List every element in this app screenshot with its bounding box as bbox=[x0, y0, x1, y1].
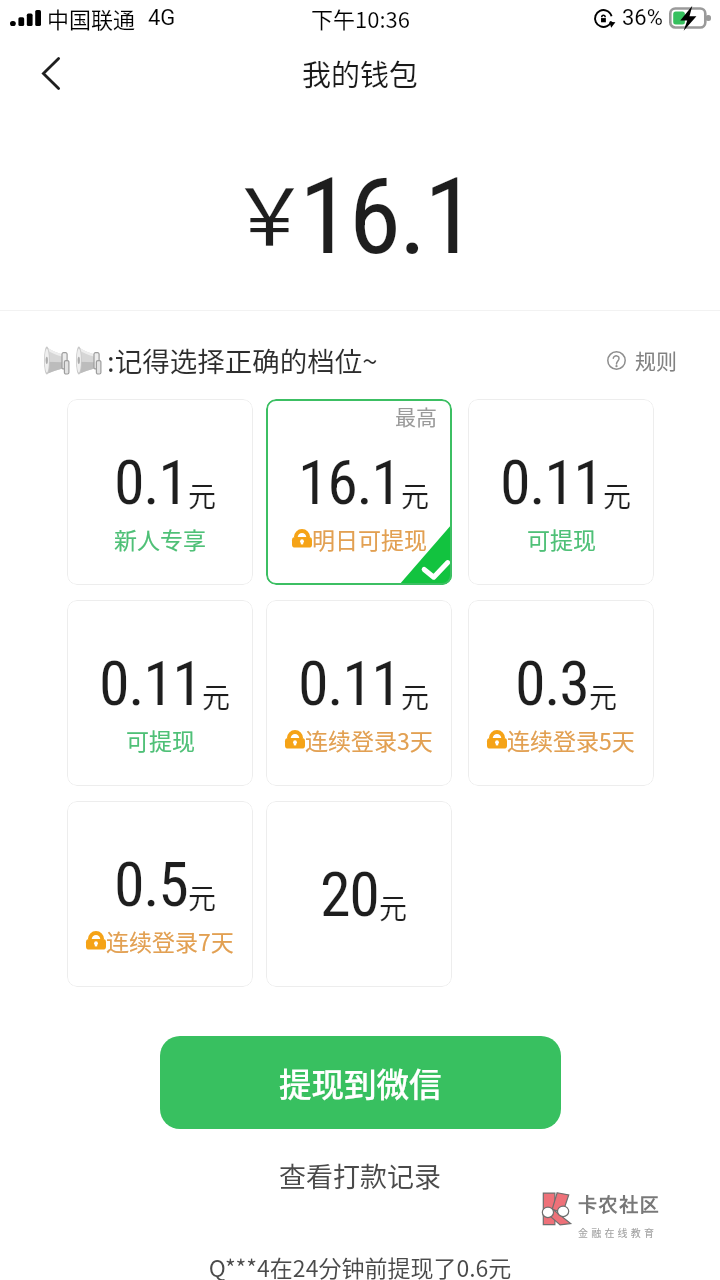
staticText: 连续登录7天 bbox=[106, 924, 234, 957]
staticText: 元 bbox=[589, 676, 618, 717]
staticText: 36% bbox=[622, 5, 663, 31]
button[interactable]: 0.1 bbox=[67, 399, 253, 585]
staticText: 元 bbox=[401, 676, 430, 717]
staticText: 下午10:36 bbox=[311, 2, 410, 34]
button[interactable]: 0.11 bbox=[67, 600, 253, 786]
staticText: 元 bbox=[188, 475, 217, 516]
staticText: 连续登录5天 bbox=[507, 723, 635, 756]
button[interactable]: 提现到微信 bbox=[160, 1036, 561, 1129]
staticText: 连续登录3天 bbox=[305, 723, 433, 756]
staticText: 元 bbox=[603, 475, 632, 516]
button[interactable]: Back bbox=[22, 44, 80, 102]
staticText: 16.1 bbox=[299, 155, 474, 279]
staticText: 0.11 bbox=[500, 446, 603, 519]
staticText: 元 bbox=[202, 676, 231, 717]
staticText: 0.3 bbox=[515, 647, 589, 720]
staticText: 0.11 bbox=[99, 647, 202, 720]
staticText: 可提现 bbox=[126, 723, 195, 756]
staticText: 新人专享 bbox=[114, 522, 206, 555]
staticText: 可提现 bbox=[527, 522, 596, 555]
staticText: Q***4在24分钟前提现了0.6元 bbox=[0, 1250, 720, 1280]
button[interactable]: 0.11 bbox=[468, 399, 654, 585]
staticText: ￥ bbox=[230, 154, 309, 268]
staticText: 4G bbox=[148, 5, 176, 31]
button[interactable]: 0.3 bbox=[468, 600, 654, 786]
staticText: 最高 bbox=[395, 401, 437, 431]
staticText: 16.1 bbox=[298, 446, 401, 519]
staticText: 查看打款记录 bbox=[279, 1156, 441, 1195]
button[interactable]: 0.5 bbox=[67, 801, 253, 987]
staticText: 元 bbox=[401, 475, 430, 516]
button[interactable]: 查看打款记录 bbox=[0, 1156, 720, 1196]
staticText: 中国联通 bbox=[47, 2, 136, 34]
staticText: 0.11 bbox=[298, 647, 401, 720]
staticText: :记得选择正确的档位~ bbox=[107, 340, 378, 380]
staticText: 金融在线教育 bbox=[578, 1225, 658, 1239]
staticText: 0.1 bbox=[114, 446, 188, 519]
staticText: 卡农社区 bbox=[578, 1190, 661, 1218]
staticText: 提现到微信 bbox=[279, 1059, 442, 1106]
staticText: 元 bbox=[188, 877, 217, 918]
button[interactable]: 规则 bbox=[607, 345, 677, 375]
staticText: 0.5 bbox=[114, 848, 188, 921]
staticText: 元 bbox=[379, 887, 408, 928]
button[interactable]: 20 bbox=[266, 801, 452, 987]
staticText: 规则 bbox=[635, 345, 677, 375]
button[interactable]: 0.11 bbox=[266, 600, 452, 786]
staticText: 20 bbox=[320, 858, 379, 931]
staticText: 明日可提现 bbox=[312, 522, 427, 555]
staticText: 我的钱包 bbox=[302, 52, 419, 94]
button[interactable]: 最高 bbox=[266, 399, 452, 585]
